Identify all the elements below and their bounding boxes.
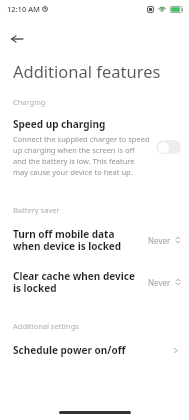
staticText: Battery saver bbox=[13, 205, 60, 215]
staticText: Turn off mobile data when device is lock… bbox=[13, 227, 143, 253]
staticText: Never bbox=[148, 235, 171, 246]
staticText: Additional features bbox=[13, 60, 161, 82]
staticText: 12:10 AM bbox=[7, 4, 40, 14]
staticText: Connect the supplied charger to speed up… bbox=[13, 134, 150, 177]
button[interactable]: Schedule power on/off bbox=[0, 341, 189, 359]
button[interactable]: Clear cache when device is locked bbox=[0, 267, 189, 297]
button[interactable]: Back bbox=[4, 26, 30, 52]
staticText: Additional settings bbox=[13, 321, 79, 331]
button[interactable]: Speed up charging toggle bbox=[156, 140, 181, 154]
staticText: Speed up charging bbox=[13, 117, 106, 131]
staticText: Charging bbox=[13, 97, 46, 107]
staticText: Never bbox=[148, 277, 171, 288]
staticText: Schedule power on/off bbox=[13, 343, 171, 357]
staticText: Clear cache when device is locked bbox=[13, 269, 143, 295]
button[interactable]: Speed up charging bbox=[0, 115, 189, 179]
button[interactable]: Turn off mobile data when device is lock… bbox=[0, 225, 189, 255]
